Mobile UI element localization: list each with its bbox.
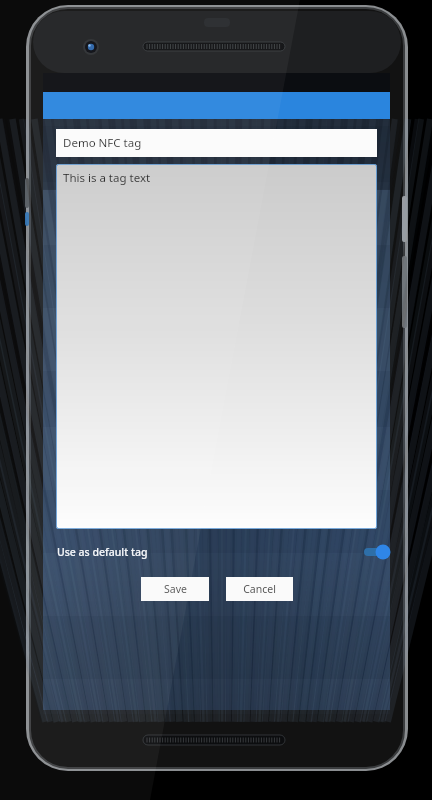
button[interactable]: Demo NFC tag: [56, 129, 377, 157]
staticText: Demo NFC tag: [63, 135, 142, 151]
staticText: Save: [164, 582, 187, 596]
button[interactable]: Use as default tag: [43, 539, 390, 565]
button[interactable]: This is a tag text: [56, 164, 377, 529]
button[interactable]: Cancel: [226, 577, 293, 601]
button[interactable]: Use as default tag toggle: [364, 542, 390, 562]
staticText: Use as default tag: [57, 545, 148, 559]
button[interactable]: Save: [141, 577, 209, 601]
staticText: Cancel: [243, 582, 276, 596]
staticText: This is a tag text: [63, 170, 151, 186]
